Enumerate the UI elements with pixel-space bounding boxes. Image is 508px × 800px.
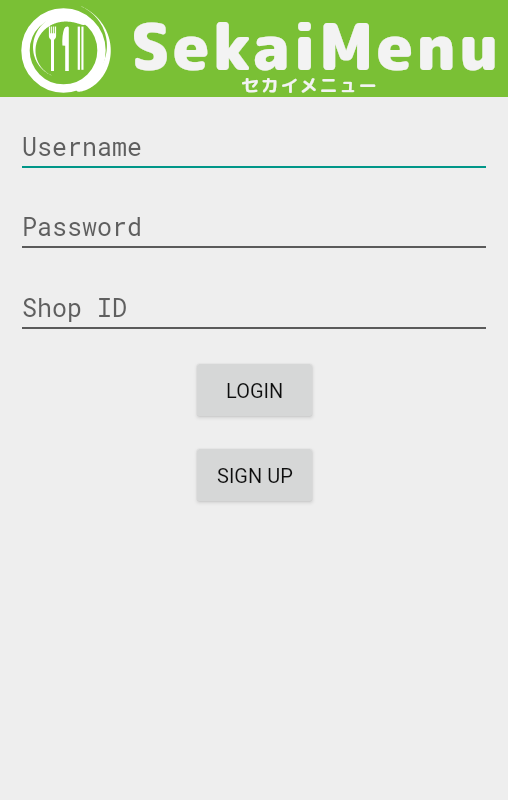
- staticText: Password: [22, 210, 143, 243]
- staticText: SIGN UP: [217, 464, 293, 487]
- staticText: セカイメニュー: [241, 73, 379, 98]
- button[interactable]: SIGN UP: [197, 449, 312, 501]
- staticText: LOGIN: [226, 379, 284, 402]
- button[interactable]: LOGIN: [197, 364, 312, 416]
- staticText: Username: [22, 130, 143, 163]
- staticText: Shop ID: [22, 291, 128, 324]
- staticText: SekaiMenu: [131, 2, 502, 90]
